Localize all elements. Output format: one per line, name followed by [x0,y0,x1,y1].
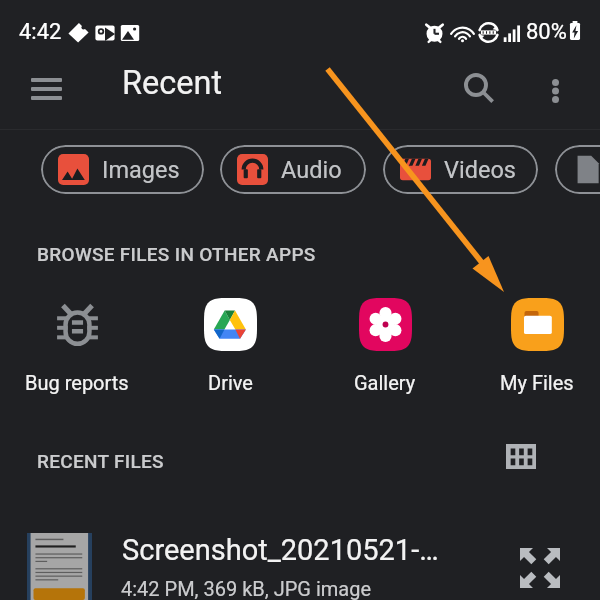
button[interactable]: Expand [512,528,568,584]
staticText: 4:42 [19,19,62,45]
button[interactable]: Audio [220,145,366,194]
staticText: BROWSE FILES IN OTHER APPS [37,243,316,265]
staticText: My Files [500,371,574,394]
button[interactable]: Docs [555,145,600,194]
staticText: Audio [281,156,342,184]
staticText: Bug reports [25,371,129,394]
staticText: 4:42 PM, 369 kB, JPG image [121,577,372,600]
staticText: Videos [444,156,516,184]
button[interactable]: Search [448,56,504,112]
button[interactable]: Drive [155,298,305,394]
button[interactable]: Images [41,145,204,194]
staticText: Recent [122,64,223,102]
staticText: RECENT FILES [37,450,164,472]
staticText: Images [102,156,180,184]
staticText: Gallery [354,371,416,394]
button[interactable]: Grid view [496,436,546,476]
staticText: Drive [208,371,253,394]
button[interactable]: Gallery [310,298,460,394]
button[interactable]: Videos [383,145,538,194]
staticText: Screenshot_20210521-… [122,533,439,567]
button[interactable]: More options [532,56,580,104]
staticText: 80% [526,19,567,45]
button[interactable]: Open navigation drawer [15,63,77,125]
button[interactable]: My Files [462,298,600,394]
button[interactable]: Screenshot_20210521-… [0,500,600,600]
button[interactable]: Bug reports [2,298,152,394]
